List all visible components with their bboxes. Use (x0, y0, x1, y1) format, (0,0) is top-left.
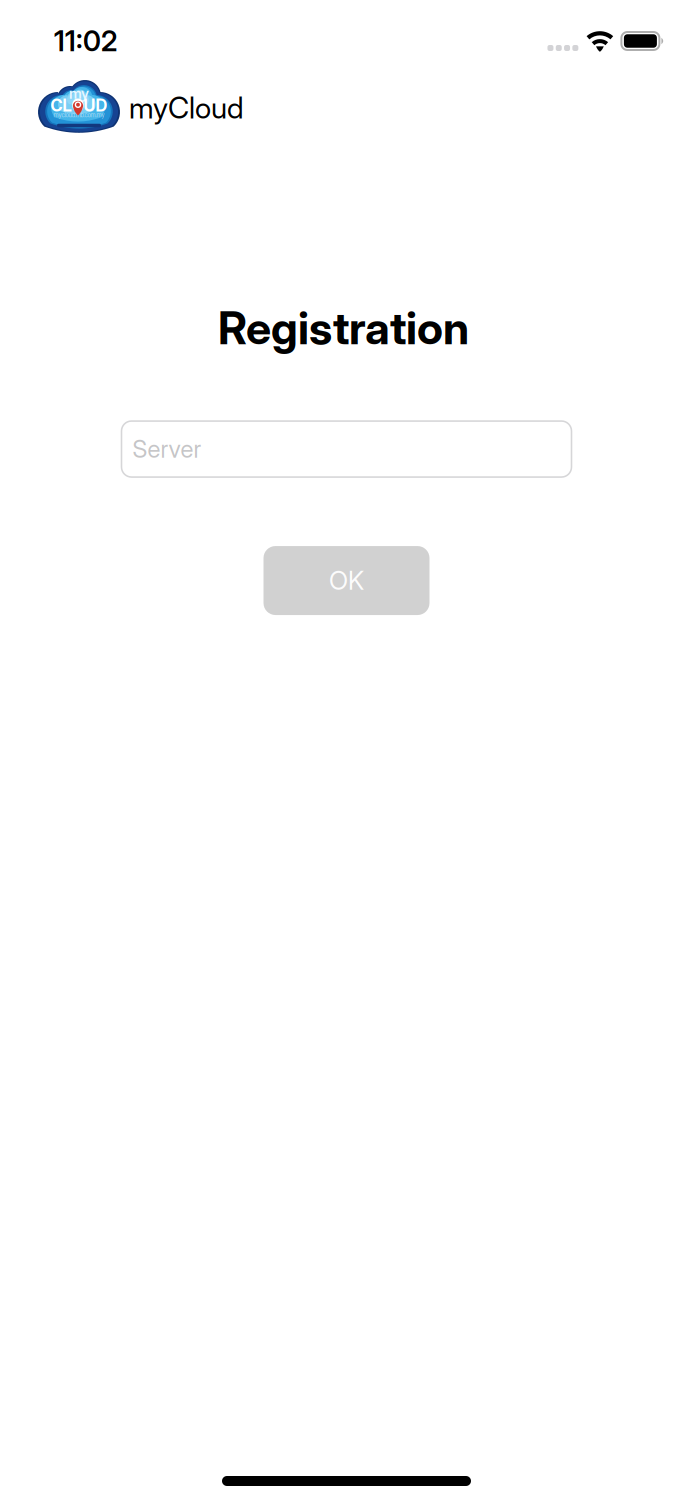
staticText: mycloud.tnb.com.my (53, 111, 104, 119)
staticText: 11:02 (54, 24, 117, 58)
button[interactable]: Server (121, 421, 571, 477)
staticText: my (69, 85, 89, 102)
button[interactable]: OK (263, 546, 429, 615)
staticText: Registration (218, 301, 469, 355)
staticText: OK (329, 565, 364, 596)
staticText: Server (132, 434, 201, 463)
staticText: CLOUD (50, 95, 107, 116)
staticText: myCloud (129, 90, 244, 125)
